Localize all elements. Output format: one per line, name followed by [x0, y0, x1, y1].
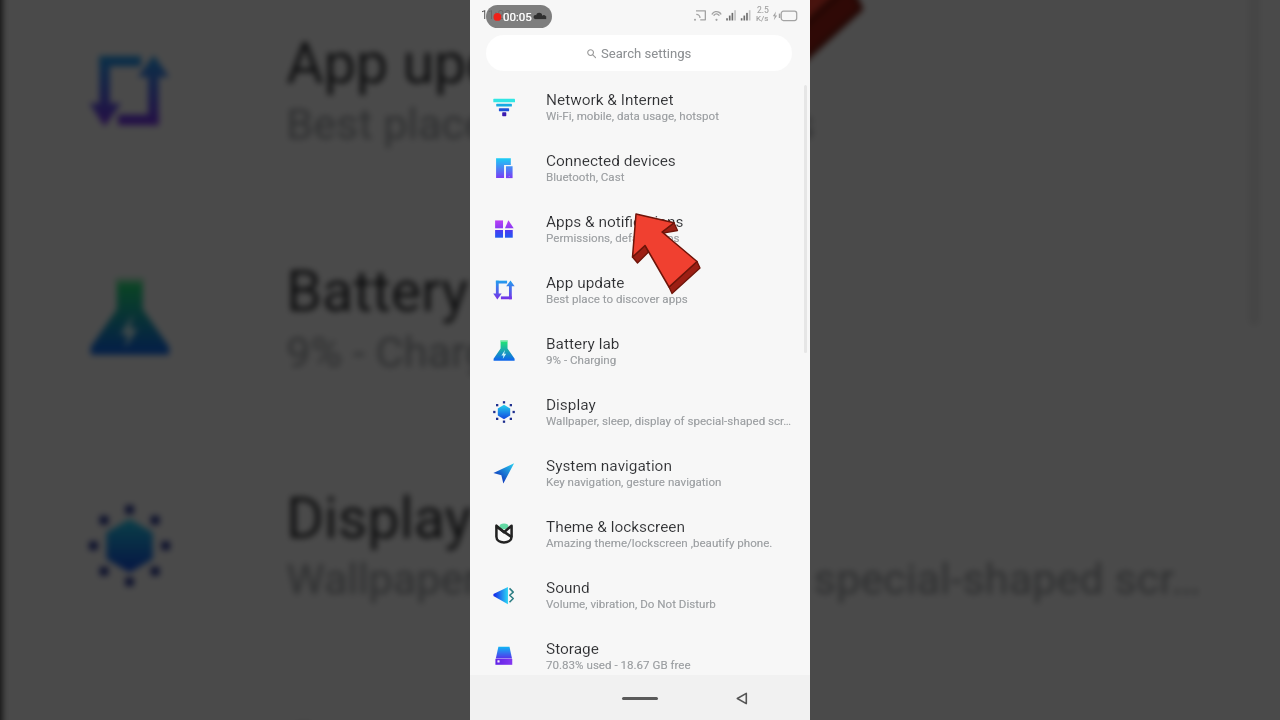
staticText: Volume, vibration, Do Not Disturb — [546, 597, 716, 611]
staticText: 11:20 — [481, 8, 511, 22]
button[interactable]: Search settings — [486, 35, 792, 71]
button[interactable]: Battery lab — [470, 320, 810, 381]
staticText: Bluetooth, Cast — [546, 170, 625, 184]
button[interactable]: Storage — [470, 625, 810, 686]
staticText: 9% - Charging — [546, 353, 617, 367]
staticText: Wallpaper, sleep, display of special-sha… — [546, 414, 792, 428]
button[interactable]: App update — [3, 0, 1280, 203]
button[interactable]: Display — [3, 430, 1280, 658]
staticText: Connected devices — [546, 152, 676, 170]
staticText: System navigation — [546, 457, 672, 475]
button[interactable]: Network & Internet — [470, 76, 810, 137]
staticText: App update — [546, 274, 625, 292]
staticText: Amazing theme/lockscreen ,beautify phone… — [546, 536, 773, 550]
button[interactable]: Screen recorder — [486, 5, 552, 28]
staticText: Battery lab — [546, 335, 620, 353]
button[interactable]: Battery lab — [3, 203, 1280, 430]
staticText: 00:05 — [503, 10, 532, 23]
staticText: 2.5 — [757, 5, 769, 15]
button[interactable]: Home — [610, 687, 670, 709]
button[interactable]: App update — [470, 259, 810, 320]
staticText: 9% - Charging — [286, 326, 551, 378]
staticText: Wi-Fi, mobile, data usage, hotspot — [546, 109, 719, 123]
staticText: Apps & notifications — [546, 213, 684, 231]
button[interactable]: Back — [726, 683, 756, 713]
staticText: Wallpaper, sleep, display of special-sha… — [286, 553, 1204, 605]
staticText: Battery lab — [286, 259, 562, 326]
staticText: Network & Internet — [546, 91, 674, 109]
staticText: Permissions, default apps — [546, 231, 680, 245]
button[interactable]: Connected devices — [470, 137, 810, 198]
staticText: Storage — [546, 640, 599, 658]
button[interactable]: Display — [470, 381, 810, 442]
staticText: Display — [286, 486, 473, 553]
staticText: Key navigation, gesture navigation — [546, 475, 722, 489]
staticText: Best place to discover apps — [546, 292, 688, 306]
staticText: 70.83% used - 18.67 GB free — [546, 658, 691, 672]
button[interactable]: Apps & notifications — [470, 198, 810, 259]
staticText: System navigation — [286, 714, 756, 720]
button[interactable]: System navigation — [3, 658, 1280, 720]
staticText: K/s — [756, 14, 769, 23]
staticText: Sound — [546, 579, 590, 597]
button[interactable]: Theme & lockscreen — [470, 503, 810, 564]
staticText: Search settings — [601, 46, 692, 61]
staticText: Theme & lockscreen — [546, 518, 685, 536]
button[interactable]: Sound — [470, 564, 810, 625]
staticText: App update — [286, 31, 581, 98]
staticText: Display — [546, 396, 596, 414]
button[interactable]: System navigation — [470, 442, 810, 503]
staticText: Best place to discover apps — [286, 98, 816, 150]
